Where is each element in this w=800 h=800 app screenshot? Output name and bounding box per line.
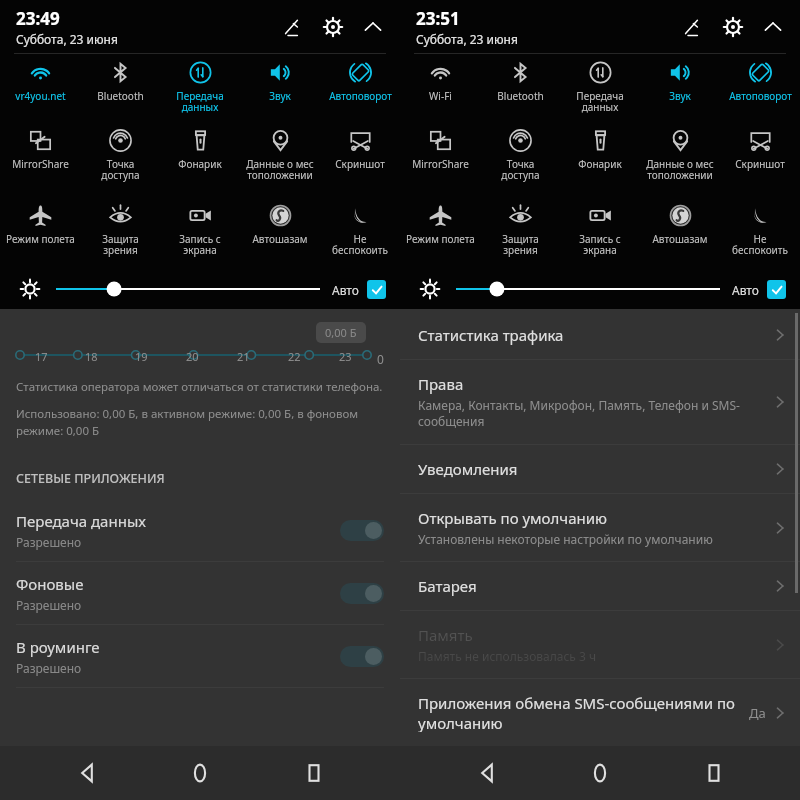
button[interactable]: Точка доступа [80, 122, 160, 197]
staticText: Защита зрения [502, 232, 539, 257]
staticText: Данные о мес тоположении [246, 157, 314, 182]
staticText: Автошазам [252, 232, 308, 246]
staticText: 23:49 [16, 7, 60, 30]
staticText: Передача данных [176, 89, 224, 114]
staticText: Разрешено [16, 597, 82, 613]
staticText: 21 [237, 349, 250, 364]
button[interactable]: Home [573, 746, 627, 800]
button[interactable]: Батарея [400, 562, 800, 611]
staticText: Звук [669, 89, 691, 103]
staticText: Передача данных [576, 89, 624, 114]
staticText: Приложения обмена SMS-сообщениями по умо… [418, 693, 749, 732]
button[interactable]: Collapse [760, 14, 786, 40]
staticText: Статистика оператора может отличаться от… [16, 379, 383, 395]
staticText: Да [749, 704, 766, 722]
button[interactable]: Режим полета [0, 197, 80, 269]
button[interactable]: Передача данных [16, 499, 384, 562]
staticText: Не беспокоить [332, 232, 388, 257]
button[interactable]: Автошазам [640, 197, 720, 269]
button[interactable]: Back [60, 746, 114, 800]
staticText: Скриншот [735, 157, 785, 171]
button[interactable]: Settings [320, 14, 346, 40]
button[interactable]: Back [460, 746, 514, 800]
button[interactable]: Права [400, 360, 800, 445]
staticText: Автоповорот [329, 89, 392, 103]
staticText: Память не использовалась 3 ч [418, 648, 597, 664]
button[interactable]: Скриншот [320, 122, 400, 197]
staticText: 23 [339, 349, 352, 364]
button[interactable]: Защита зрения [480, 197, 560, 269]
button[interactable]: Память [400, 611, 800, 679]
button[interactable]: Данные о мес тоположении [240, 122, 320, 197]
staticText: 20 [186, 349, 199, 364]
staticText: Звук [269, 89, 291, 103]
staticText: В роуминге [16, 637, 100, 657]
button[interactable]: В роуминге [16, 625, 384, 688]
button[interactable]: Edit [680, 14, 706, 40]
button[interactable]: Данные о мес тоположении [640, 122, 720, 197]
button[interactable]: Recents [287, 746, 341, 800]
button[interactable]: Фонарик [560, 122, 640, 197]
button[interactable]: Скриншот [720, 122, 800, 197]
button[interactable]: Фонарик [160, 122, 240, 197]
staticText: Фонарик [578, 157, 622, 171]
button[interactable]: Точка доступа [480, 122, 560, 197]
button[interactable]: Фоновые [16, 562, 384, 625]
staticText: Суббота, 23 июня [16, 31, 118, 47]
button[interactable]: Brightness [56, 277, 320, 301]
staticText: Уведомления [418, 459, 518, 479]
button[interactable]: Передача данных [160, 54, 240, 122]
staticText: 18 [85, 349, 98, 364]
button[interactable]: Edit [280, 14, 306, 40]
button[interactable]: Авто [732, 280, 786, 299]
button[interactable]: Уведомления [400, 445, 800, 494]
button[interactable]: Запись с экрана [160, 197, 240, 269]
staticText: Защита зрения [102, 232, 139, 257]
staticText: Точка доступа [101, 157, 140, 182]
button[interactable]: Передача данных [560, 54, 640, 122]
button[interactable]: Collapse [360, 14, 386, 40]
button[interactable]: Автоповорот [320, 54, 400, 122]
staticText: Режим полета [406, 232, 475, 246]
button[interactable]: Wi-Fi [400, 54, 480, 122]
button[interactable]: Запись с экрана [560, 197, 640, 269]
button[interactable]: Bluetooth [80, 54, 160, 122]
button[interactable]: Звук [240, 54, 320, 122]
button[interactable]: Приложения обмена SMS-сообщениями по умо… [400, 679, 800, 746]
button[interactable]: Не беспокоить [320, 197, 400, 269]
button[interactable]: Не беспокоить [720, 197, 800, 269]
staticText: MirrorShare [12, 157, 69, 171]
button[interactable]: Brightness [456, 277, 720, 301]
button[interactable]: vr4you.net [0, 54, 80, 122]
button[interactable]: Home [173, 746, 227, 800]
staticText: СЕТЕВЫЕ ПРИЛОЖЕНИЯ [16, 470, 165, 487]
button[interactable]: MirrorShare [400, 122, 480, 197]
staticText: 22 [288, 349, 301, 364]
staticText: Режим полета [6, 232, 75, 246]
staticText: 19 [135, 349, 148, 364]
button[interactable]: Режим полета [400, 197, 480, 269]
button[interactable]: Звук [640, 54, 720, 122]
staticText: Точка доступа [501, 157, 540, 182]
button[interactable]: Открывать по умолчанию [400, 494, 800, 562]
button[interactable]: Bluetooth [480, 54, 560, 122]
staticText: Память [418, 625, 473, 645]
staticText: Автоповорот [729, 89, 792, 103]
button[interactable]: Автошазам [240, 197, 320, 269]
staticText: 0,00 Б [325, 325, 357, 340]
button[interactable]: Settings [720, 14, 746, 40]
staticText: Авто [732, 282, 759, 298]
button[interactable]: Автоповорот [720, 54, 800, 122]
staticText: Использовано: 0,00 Б, в активном режиме:… [16, 406, 384, 438]
staticText: 0 [377, 351, 384, 367]
button[interactable]: Recents [687, 746, 741, 800]
staticText: Камера, Контакты, Микрофон, Память, Теле… [418, 397, 772, 430]
button[interactable]: MirrorShare [0, 122, 80, 197]
staticText: Передача данных [16, 511, 146, 531]
button[interactable]: Статистика трафика [400, 309, 800, 360]
staticText: Скриншот [335, 157, 385, 171]
staticText: Статистика трафика [418, 325, 564, 345]
button[interactable]: Защита зрения [80, 197, 160, 269]
staticText: Батарея [418, 576, 477, 596]
button[interactable]: Авто [332, 280, 386, 299]
